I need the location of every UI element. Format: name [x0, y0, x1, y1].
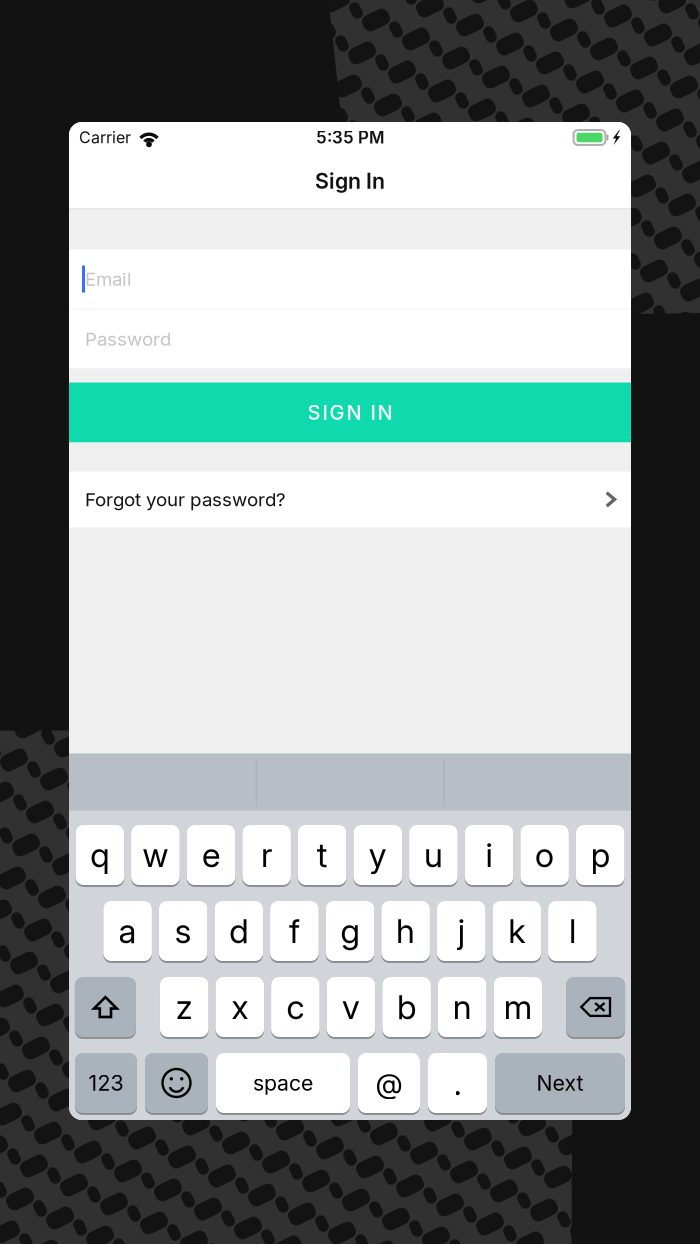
staticText: 123 — [88, 1070, 123, 1096]
button[interactable]: Next — [495, 1051, 625, 1114]
button[interactable]: d — [214, 899, 263, 962]
staticText: o — [535, 835, 554, 875]
button[interactable]: m — [493, 975, 542, 1038]
button[interactable]: q — [75, 823, 124, 886]
staticText: i — [485, 835, 492, 875]
button[interactable]: s — [159, 899, 207, 962]
staticText: Password — [85, 328, 171, 350]
button[interactable]: SIGN IN — [69, 382, 631, 442]
button[interactable]: f — [270, 899, 319, 962]
button[interactable]: k — [492, 899, 541, 962]
staticText: Next — [536, 1070, 583, 1096]
staticText: h — [396, 911, 415, 951]
button[interactable]: v — [327, 975, 375, 1038]
staticText: a — [119, 911, 137, 951]
staticText: x — [231, 987, 248, 1027]
button[interactable]: Delete — [566, 975, 625, 1038]
button[interactable]: g — [326, 899, 374, 962]
staticText: t — [317, 835, 328, 875]
button[interactable]: j — [437, 899, 485, 962]
button[interactable]: p — [576, 823, 624, 886]
staticText: l — [569, 911, 576, 951]
staticText: y — [369, 835, 387, 875]
staticText: @ — [375, 1066, 402, 1100]
button[interactable]: a — [103, 899, 152, 962]
staticText: p — [591, 835, 610, 875]
button[interactable]: e — [187, 823, 235, 886]
staticText: v — [342, 987, 360, 1027]
staticText: n — [453, 987, 472, 1027]
staticText: SIGN IN — [307, 400, 392, 425]
button[interactable]: t — [298, 823, 346, 886]
button[interactable]: o — [520, 823, 569, 886]
staticText: Carrier — [79, 128, 131, 147]
button[interactable]: Forgot your password? — [69, 471, 631, 527]
button[interactable]: r — [242, 823, 291, 886]
button[interactable]: h — [381, 899, 430, 962]
button[interactable]: i — [465, 823, 513, 886]
staticText: d — [229, 911, 248, 951]
staticText: z — [176, 987, 193, 1027]
staticText: u — [424, 835, 443, 875]
staticText: m — [504, 987, 532, 1027]
staticText: e — [202, 835, 220, 875]
button[interactable]: space — [216, 1051, 350, 1114]
button[interactable]: Emoji — [145, 1051, 208, 1114]
button[interactable]: l — [548, 899, 597, 962]
staticText: Email — [85, 268, 132, 290]
button[interactable]: u — [409, 823, 458, 886]
staticText: f — [289, 911, 300, 951]
staticText: 5:35 PM — [316, 127, 384, 148]
button[interactable]: w — [131, 823, 180, 886]
staticText: q — [90, 835, 109, 875]
button[interactable]: @ — [358, 1051, 420, 1114]
button[interactable]: . — [428, 1051, 487, 1114]
staticText: . — [453, 1063, 461, 1103]
staticText: s — [175, 911, 192, 951]
staticText: r — [261, 835, 272, 875]
staticText: c — [286, 987, 304, 1027]
staticText: w — [142, 835, 168, 875]
button[interactable]: z — [160, 975, 208, 1038]
staticText: Forgot your password? — [85, 488, 286, 511]
button[interactable]: y — [353, 823, 402, 886]
staticText: b — [397, 987, 416, 1027]
button[interactable]: Shift — [75, 975, 136, 1038]
staticText: Sign In — [315, 168, 385, 194]
staticText: j — [458, 911, 465, 951]
button[interactable]: 123 — [75, 1051, 137, 1114]
staticText: space — [253, 1070, 313, 1096]
staticText: k — [508, 911, 525, 951]
button[interactable]: x — [215, 975, 264, 1038]
button[interactable]: n — [438, 975, 486, 1038]
button[interactable]: c — [271, 975, 320, 1038]
button[interactable]: b — [382, 975, 431, 1038]
staticText: g — [340, 911, 359, 951]
